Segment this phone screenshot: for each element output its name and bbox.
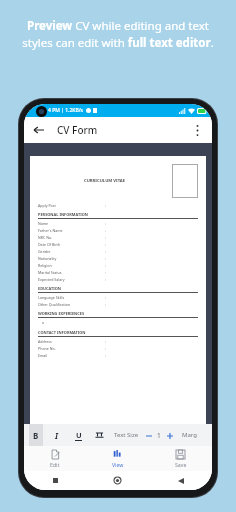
staticText: Edit <box>50 461 60 468</box>
button[interactable]: Increase text size <box>165 431 174 440</box>
staticText: Language Skills <box>38 295 105 300</box>
staticText: Email <box>38 353 105 358</box>
staticText: Gender <box>38 249 105 254</box>
staticText: Marg <box>182 431 197 439</box>
button[interactable]: Edit <box>24 446 86 471</box>
button[interactable]: View <box>86 446 149 471</box>
staticText: CONTACT INFORMATION <box>38 330 86 335</box>
button[interactable]: Home <box>86 471 149 490</box>
staticText: Name <box>38 221 105 226</box>
staticText: B <box>33 430 39 441</box>
button[interactable]: Italic <box>50 428 64 442</box>
staticText: Other Qualification <box>38 302 105 307</box>
staticText: NRC No. <box>38 235 105 240</box>
button[interactable]: Back <box>149 471 212 490</box>
button[interactable]: Save <box>149 446 212 471</box>
staticText: CV Form <box>57 123 98 137</box>
button[interactable]: More options <box>189 122 205 138</box>
button[interactable]: Recent apps <box>24 471 86 490</box>
staticText: EDUCATION <box>38 286 61 291</box>
button[interactable]: Bold <box>29 424 43 446</box>
button[interactable]: Back <box>31 122 47 138</box>
staticText: Nationality <box>38 256 105 261</box>
staticText: U <box>76 430 82 440</box>
staticText: Marital Status <box>38 270 105 275</box>
staticText: CURRICULUM VITAE <box>84 178 126 184</box>
button[interactable]: Strikethrough <box>92 428 106 442</box>
staticText: Preview CV while editing and text styles… <box>14 18 222 50</box>
staticText: WORKING EXPERIENCES <box>38 311 85 316</box>
staticText: Expected Salary <box>38 277 105 282</box>
button[interactable]: Decrease text size <box>144 431 153 440</box>
staticText: Apply Post <box>38 203 105 208</box>
staticText: Text Size <box>114 431 139 439</box>
staticText: Religion <box>38 263 105 268</box>
staticText: 4 PM | 1.2KB/s <box>48 107 84 114</box>
staticText: I <box>55 430 59 441</box>
button[interactable]: Underline <box>71 428 85 442</box>
staticText: Father's Name <box>38 228 105 233</box>
staticText: View <box>112 461 124 468</box>
staticText: Save <box>175 461 187 468</box>
staticText: o <box>42 320 45 325</box>
staticText: Date Of Birth <box>38 242 105 247</box>
staticText: 1 <box>157 431 161 440</box>
staticText: PERSONAL INFORMATION <box>38 212 88 217</box>
staticText: Phone No. <box>38 346 105 351</box>
staticText: Address <box>38 339 105 344</box>
